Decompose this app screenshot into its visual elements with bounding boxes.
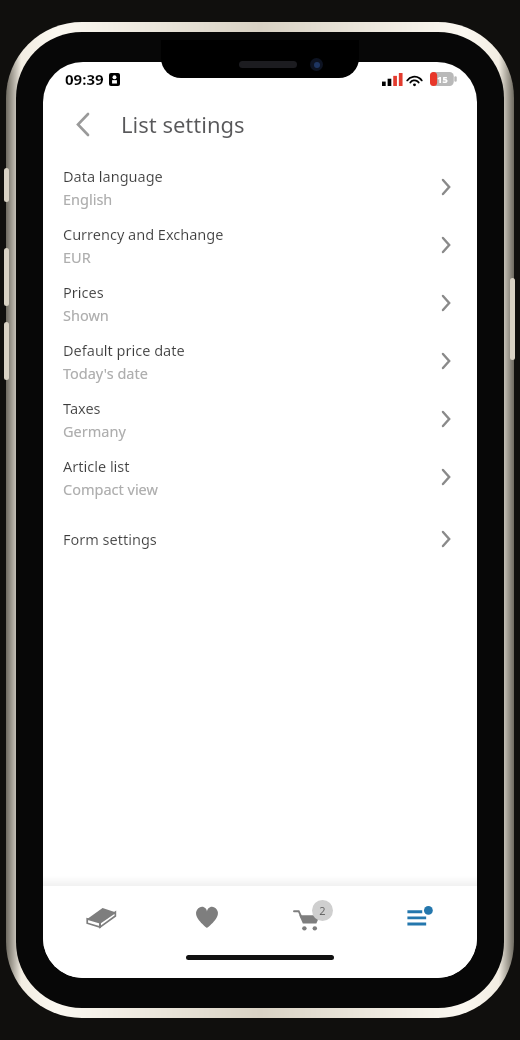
button[interactable]: Form settings	[43, 516, 477, 562]
button[interactable]: Currency and Exchange	[43, 216, 477, 274]
button[interactable]: Lists	[370, 886, 470, 948]
staticText: Form settings	[63, 529, 157, 549]
staticText: Germany	[63, 421, 126, 441]
staticText: Compact view	[63, 479, 158, 499]
staticText: Currency and Exchange	[63, 224, 224, 244]
staticText: Today's date	[63, 363, 148, 383]
button[interactable]: Article list	[43, 448, 477, 506]
button[interactable]: Taxes	[43, 390, 477, 448]
staticText: Data language	[63, 166, 163, 186]
button[interactable]: Cart, 2 items	[263, 886, 363, 948]
button[interactable]: Catalog	[50, 886, 150, 948]
staticText: Shown	[63, 305, 109, 325]
button[interactable]: Favorites	[157, 886, 257, 948]
staticText: Taxes	[63, 398, 101, 418]
staticText: EUR	[63, 247, 91, 267]
staticText: Default price date	[63, 340, 185, 360]
button[interactable]: Back	[61, 102, 105, 146]
staticText: Prices	[63, 282, 104, 302]
staticText: English	[63, 189, 113, 209]
staticText: List settings	[121, 109, 245, 139]
button[interactable]: Data language	[43, 158, 477, 216]
staticText: 2	[319, 903, 326, 918]
staticText: 15	[437, 73, 448, 85]
button[interactable]: Prices	[43, 274, 477, 332]
button[interactable]: Default price date	[43, 332, 477, 390]
staticText: 09:39	[65, 69, 104, 89]
staticText: Article list	[63, 456, 130, 476]
